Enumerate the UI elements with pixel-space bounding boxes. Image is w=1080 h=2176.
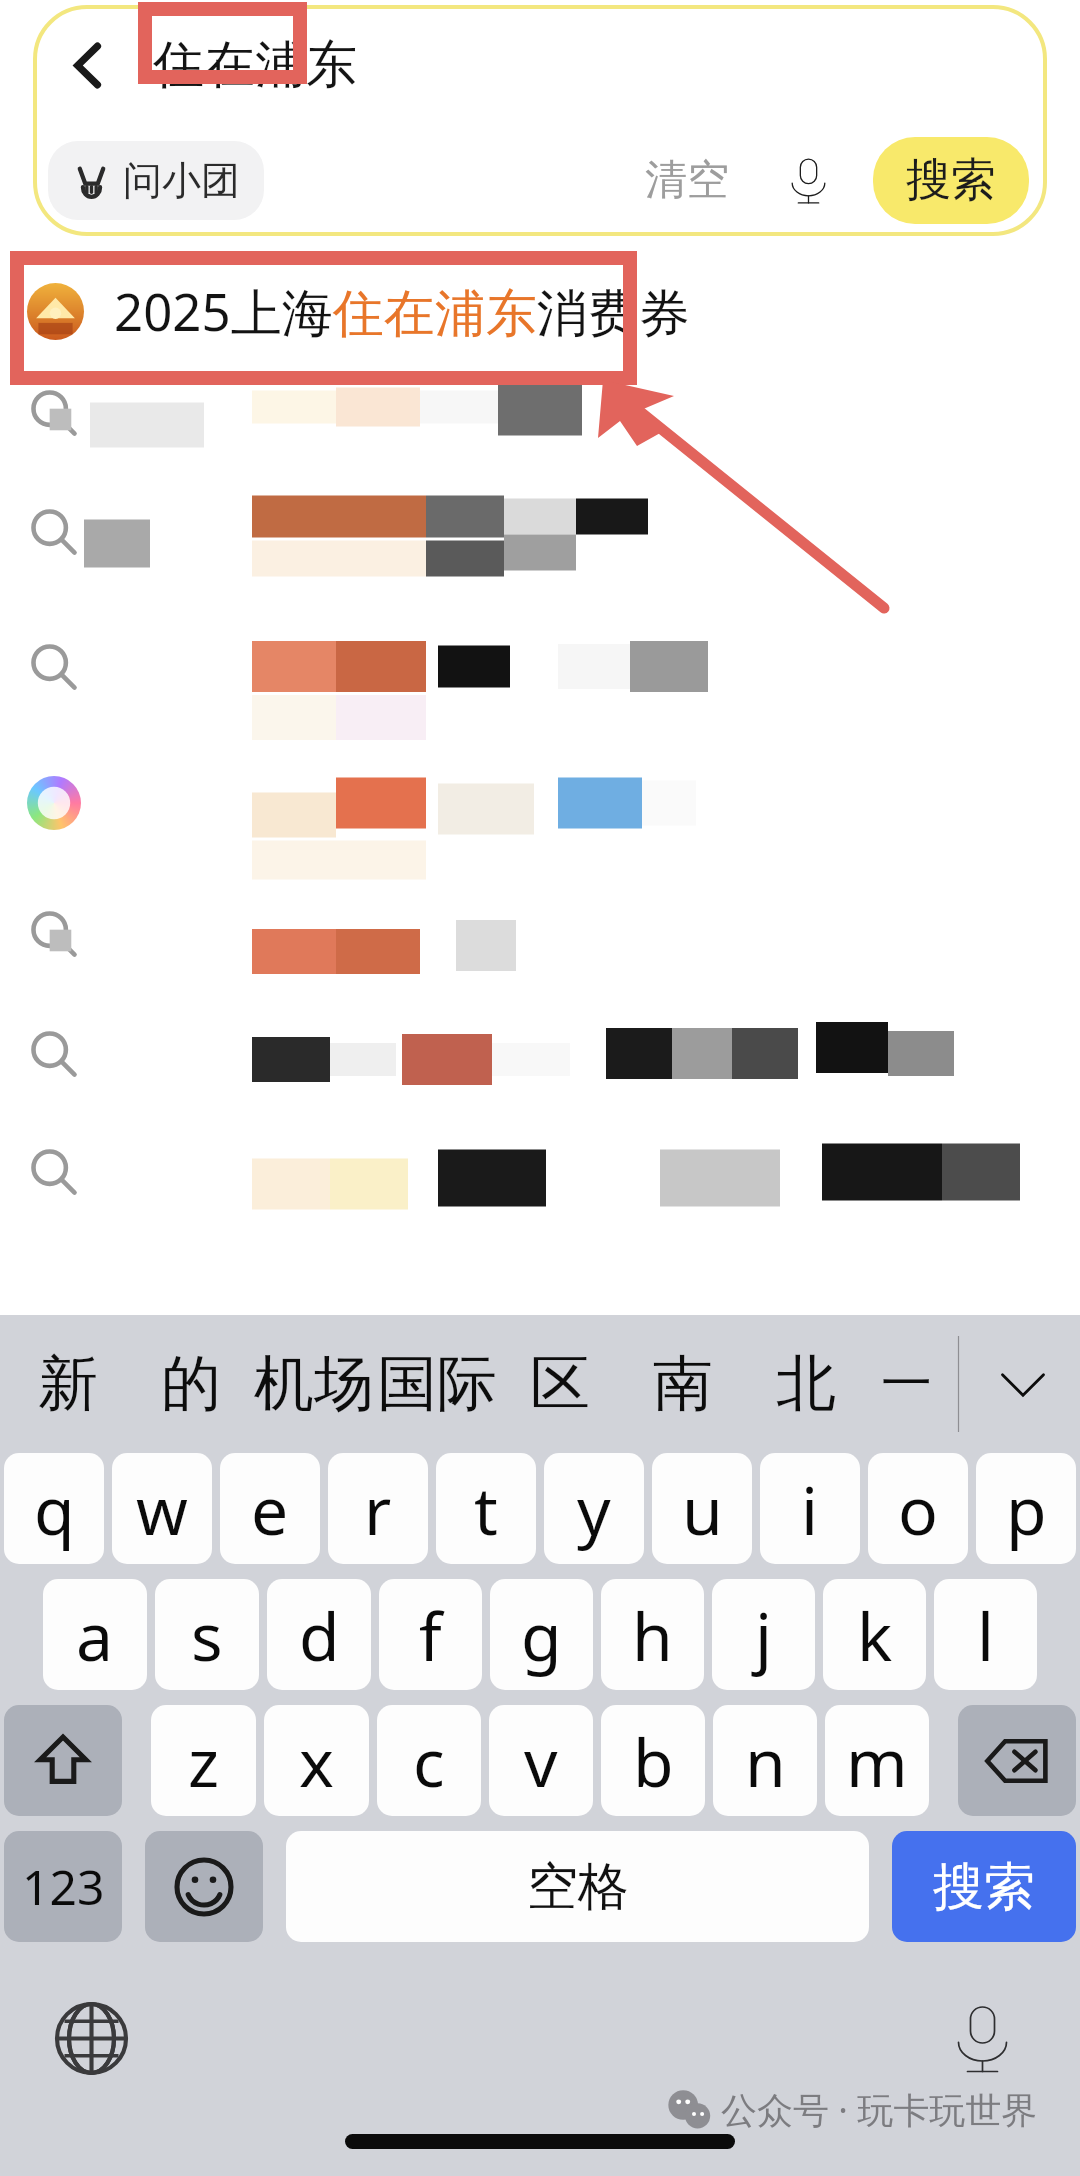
button[interactable]: g	[490, 1579, 593, 1690]
staticText: t	[474, 1464, 498, 1554]
button[interactable]	[0, 599, 1080, 734]
button[interactable]	[0, 734, 1080, 872]
button[interactable]: c	[377, 1705, 481, 1816]
staticText: v	[524, 1716, 558, 1806]
staticText: 一	[881, 1352, 932, 1416]
button[interactable]: i	[760, 1453, 860, 1564]
button[interactable]: a	[43, 1579, 147, 1690]
staticText: 国际	[377, 1346, 497, 1422]
button[interactable]	[0, 464, 1080, 599]
button[interactable]: 机场	[252, 1315, 375, 1453]
button[interactable]: f	[379, 1579, 482, 1690]
button[interactable]: 清空	[633, 142, 741, 219]
staticText: 清空	[645, 154, 729, 207]
staticText: 新	[38, 1346, 98, 1422]
staticText: m	[846, 1716, 908, 1806]
staticText: 搜索	[906, 152, 996, 209]
button[interactable]: Dictation	[945, 2001, 1020, 2076]
button[interactable]: 的	[129, 1315, 252, 1453]
staticText: z	[188, 1716, 220, 1806]
button[interactable]: j	[712, 1579, 815, 1690]
staticText: 南	[653, 1346, 713, 1422]
button[interactable]: k	[823, 1579, 926, 1690]
button[interactable]: Emoji	[145, 1831, 263, 1942]
staticText: 搜索	[933, 1855, 1035, 1919]
staticText: h	[632, 1590, 673, 1680]
staticText: 空格	[527, 1855, 629, 1919]
button[interactable]: Voice input	[774, 146, 843, 215]
button[interactable]: d	[267, 1579, 371, 1690]
button[interactable]: Backspace	[958, 1705, 1076, 1816]
staticText: d	[299, 1590, 340, 1680]
button[interactable]: u	[652, 1453, 752, 1564]
staticText: r	[364, 1464, 392, 1554]
button[interactable]: s	[155, 1579, 259, 1690]
button[interactable]: l	[934, 1579, 1037, 1690]
staticText: 2025上海住在浦东消费券	[114, 276, 690, 346]
staticText: q	[34, 1464, 75, 1554]
button[interactable]: v	[489, 1705, 593, 1816]
staticText: c	[413, 1716, 445, 1806]
staticText: y	[577, 1464, 611, 1554]
button[interactable]: 新	[6, 1315, 129, 1453]
staticText: u	[682, 1464, 723, 1554]
button[interactable]: z	[151, 1705, 256, 1816]
staticText: x	[299, 1716, 334, 1806]
button[interactable]: Back	[48, 25, 129, 106]
button[interactable]: m	[825, 1705, 929, 1816]
button[interactable]: q	[4, 1453, 104, 1564]
staticText: 问小团	[123, 156, 240, 205]
button[interactable]	[0, 872, 1080, 995]
button[interactable]: t	[436, 1453, 536, 1564]
staticText: 123	[22, 1854, 105, 1919]
button[interactable]	[0, 995, 1080, 1112]
button[interactable]: Switch language	[54, 2001, 129, 2076]
staticText: 住在浦东	[153, 33, 357, 97]
button[interactable]	[0, 362, 1080, 464]
staticText: p	[1006, 1464, 1047, 1554]
staticText: o	[898, 1464, 938, 1554]
staticText: 的	[161, 1346, 221, 1422]
button[interactable]: x	[264, 1705, 369, 1816]
button[interactable]: h	[601, 1579, 704, 1690]
button[interactable]: 区	[498, 1315, 621, 1453]
button[interactable]: Hide keyboard	[972, 1315, 1074, 1453]
staticText: w	[136, 1464, 188, 1554]
button[interactable]: w	[112, 1453, 212, 1564]
staticText: l	[977, 1590, 995, 1680]
button[interactable]: 123	[4, 1831, 122, 1942]
button[interactable]: 搜索	[892, 1831, 1076, 1942]
staticText: n	[745, 1716, 786, 1806]
staticText: g	[521, 1590, 562, 1680]
button[interactable]: r	[328, 1453, 428, 1564]
staticText: i	[801, 1464, 819, 1554]
staticText: 北	[776, 1346, 836, 1422]
button[interactable]: 2025上海住在浦东消费券	[0, 260, 1080, 362]
button[interactable]: b	[601, 1705, 705, 1816]
staticText: f	[419, 1590, 442, 1680]
button[interactable]: n	[713, 1705, 817, 1816]
button[interactable]: y	[544, 1453, 644, 1564]
button[interactable]: 搜索	[873, 137, 1029, 224]
button[interactable]: Shift	[4, 1705, 122, 1816]
button[interactable]: p	[976, 1453, 1076, 1564]
staticText: a	[76, 1590, 114, 1680]
button[interactable]	[0, 1112, 1080, 1232]
staticText: j	[755, 1590, 773, 1680]
staticText: 机场	[254, 1346, 374, 1422]
staticText: 公众号 · 玩卡玩世界	[721, 2085, 1038, 2134]
staticText: k	[857, 1590, 893, 1680]
button[interactable]: 空格	[286, 1831, 869, 1942]
button[interactable]: 南	[621, 1315, 744, 1453]
staticText: e	[251, 1464, 289, 1554]
button[interactable]: e	[220, 1453, 320, 1564]
button[interactable]: 国际	[375, 1315, 498, 1453]
staticText: 区	[530, 1346, 590, 1422]
button[interactable]: 问小团	[48, 141, 264, 220]
staticText: b	[633, 1716, 674, 1806]
button[interactable]: o	[868, 1453, 968, 1564]
staticText: s	[191, 1590, 223, 1680]
button[interactable]: 北	[744, 1315, 867, 1453]
